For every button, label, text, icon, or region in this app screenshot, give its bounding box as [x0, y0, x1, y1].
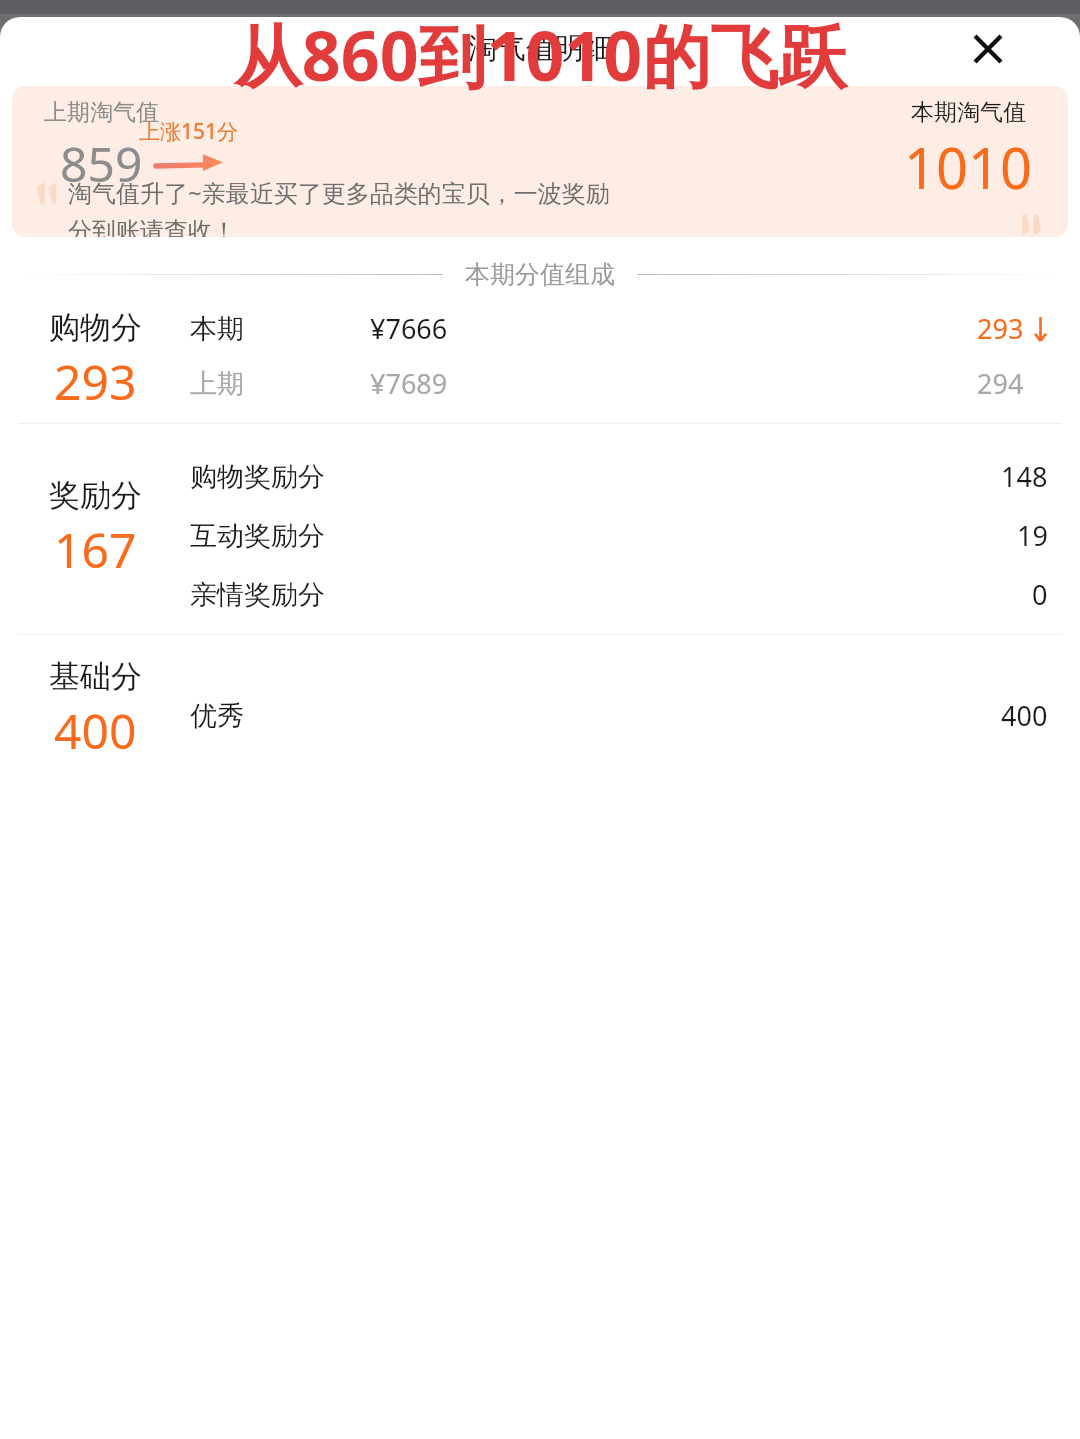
staticText: 167: [54, 517, 137, 582]
staticText: ¥7666: [370, 310, 580, 347]
staticText: 859: [60, 131, 143, 196]
staticText: 淘气值明细: [468, 30, 613, 67]
staticText: 从860到1010的飞跃: [0, 17, 1080, 101]
staticText: 购物分: [49, 308, 142, 347]
staticText: 0: [1032, 576, 1048, 613]
staticText: 本期分值组成: [465, 259, 615, 290]
staticText: 亲情奖励分: [190, 578, 325, 612]
button[interactable]: 基础分: [0, 657, 1080, 763]
staticText: 上涨151分: [139, 117, 239, 146]
staticText: ¥7689: [370, 365, 580, 402]
staticText: 400: [54, 698, 137, 763]
staticText: 互动奖励分: [190, 519, 325, 553]
staticText: 奖励分: [49, 476, 142, 515]
staticText: 148: [1001, 458, 1048, 495]
staticText: 1010: [904, 129, 1033, 205]
button[interactable]: Close: [964, 25, 1012, 73]
staticText: 淘气值升了~亲最近买了更多品类的宝贝，一波奖励 分到账请查收！: [68, 176, 610, 237]
staticText: 19: [1017, 517, 1048, 554]
button[interactable]: 购物分: [0, 308, 1080, 423]
staticText: 293: [54, 349, 137, 414]
staticText: 293: [977, 310, 1024, 347]
staticText: 294: [977, 365, 1024, 402]
staticText: 本期淘气值: [911, 98, 1026, 127]
staticText: 本期: [190, 312, 370, 346]
staticText: 基础分: [49, 657, 142, 696]
staticText: 购物奖励分: [190, 460, 325, 494]
staticText: 上期淘气值: [44, 98, 159, 127]
button[interactable]: 奖励分: [0, 446, 1080, 634]
staticText: 上期: [190, 367, 370, 401]
staticText: 优秀: [190, 699, 244, 733]
staticText: 400: [1001, 697, 1048, 734]
